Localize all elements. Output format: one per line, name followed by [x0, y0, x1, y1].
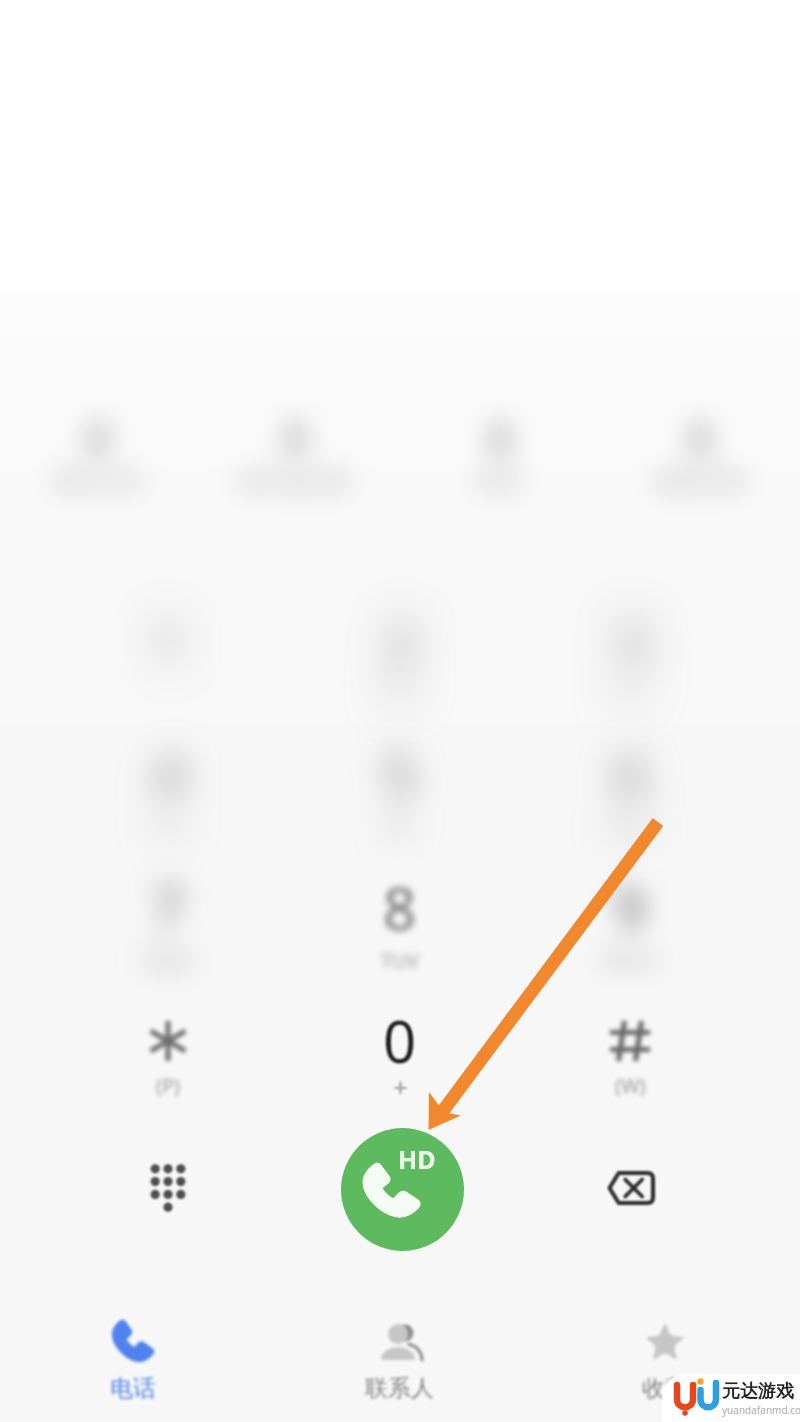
- button[interactable]: 收藏: [575, 1306, 755, 1416]
- button[interactable]: 电话: [43, 1306, 223, 1416]
- staticText: 5: [383, 735, 417, 814]
- button[interactable]: 7: [0, 745, 366, 1109]
- staticText: 3: [614, 602, 648, 681]
- button[interactable]: Keypad: [118, 1138, 218, 1238]
- button[interactable]: (P): [0, 878, 366, 1242]
- button[interactable]: 骚扰拦截: [610, 420, 790, 530]
- button[interactable]: 联系人: [309, 1306, 489, 1416]
- staticText: 电话: [110, 1374, 156, 1403]
- staticText: 联系人: [365, 1374, 434, 1403]
- staticText: (P): [156, 1072, 181, 1099]
- staticText: 0: [383, 1001, 417, 1080]
- button[interactable]: 通话记录: [8, 420, 188, 530]
- button[interactable]: 2: [202, 479, 598, 843]
- button[interactable]: 1: [0, 479, 366, 843]
- staticText: 收藏: [642, 1374, 688, 1403]
- button[interactable]: (W): [432, 878, 800, 1242]
- button[interactable]: 0: [202, 878, 598, 1242]
- staticText: TUV: [381, 947, 419, 974]
- staticText: 4: [152, 735, 186, 814]
- button[interactable]: 4: [0, 612, 366, 976]
- staticText: 6: [614, 735, 648, 814]
- staticText: yuandafanmd.com: [722, 1403, 800, 1417]
- staticText: 元达游戏: [722, 1380, 794, 1403]
- button[interactable]: 黄页: [410, 420, 590, 530]
- button[interactable]: 8: [202, 745, 598, 1109]
- staticText: +: [393, 1069, 408, 1104]
- button[interactable]: 拨号盘设置: [205, 420, 385, 530]
- staticText: (W): [615, 1072, 646, 1099]
- staticText: 2: [384, 602, 418, 681]
- staticText: HD: [398, 1142, 436, 1176]
- button[interactable]: 3: [432, 479, 800, 843]
- staticText: 8: [383, 868, 417, 947]
- button[interactable]: 6: [432, 612, 800, 976]
- staticText: 7: [151, 868, 185, 947]
- button[interactable]: Backspace: [580, 1138, 680, 1238]
- button[interactable]: 5: [202, 612, 598, 976]
- button[interactable]: Call: [341, 1128, 464, 1251]
- staticText: MNO: [606, 814, 655, 841]
- staticText: 9: [613, 868, 647, 947]
- button[interactable]: 9: [432, 745, 800, 1109]
